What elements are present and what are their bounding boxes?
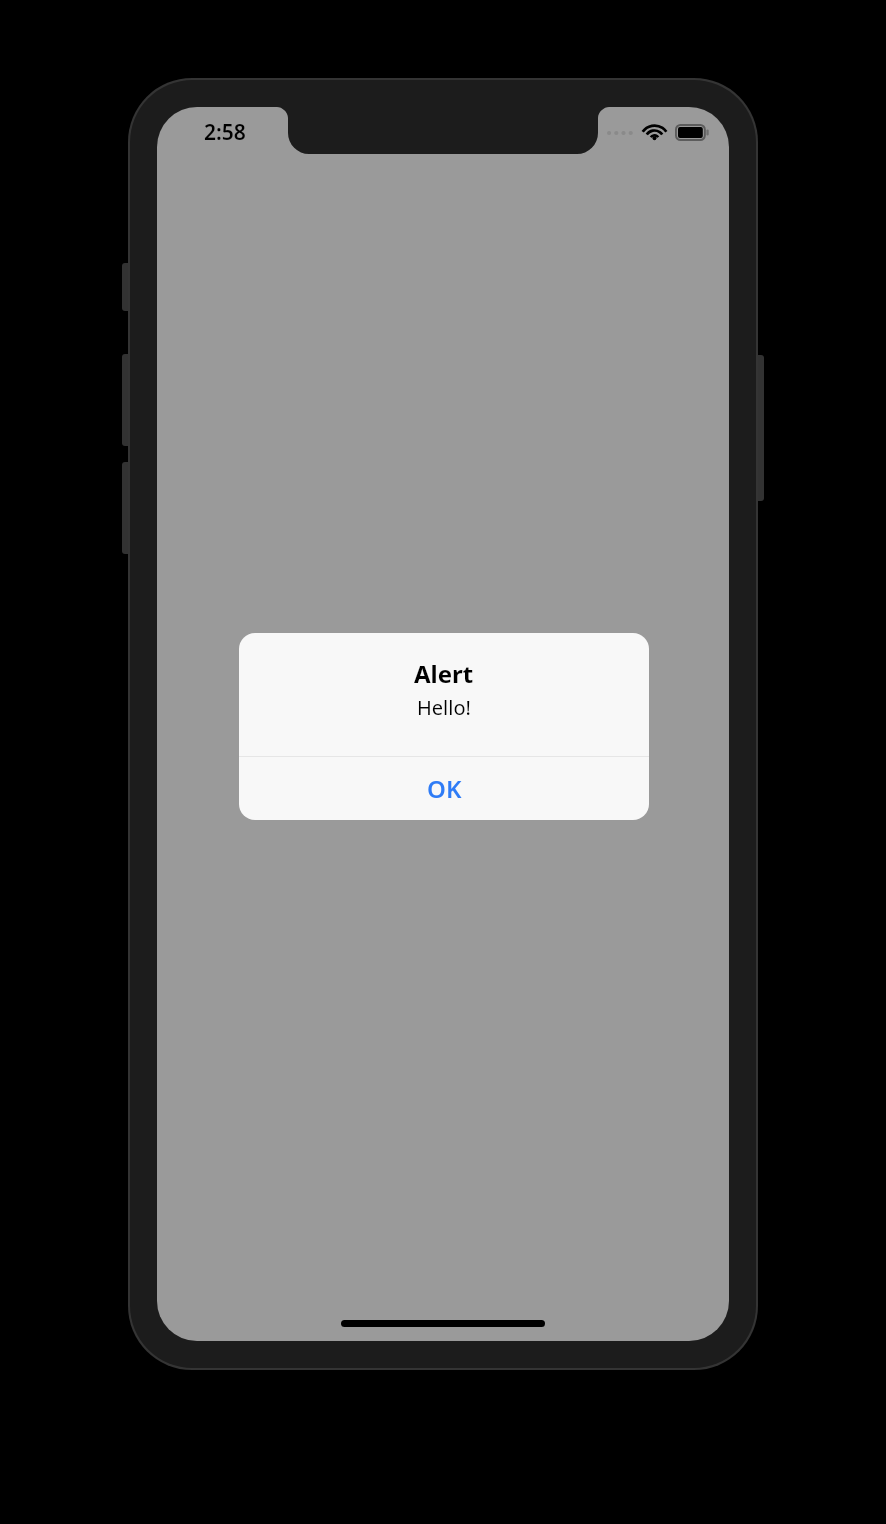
staticText: Hello! bbox=[417, 694, 471, 721]
button[interactable]: OK bbox=[239, 757, 649, 820]
other: Home indicator bbox=[341, 1320, 545, 1327]
staticText: 2:58 bbox=[204, 118, 246, 147]
staticText: OK bbox=[427, 772, 462, 805]
staticText: Alert bbox=[414, 657, 474, 690]
